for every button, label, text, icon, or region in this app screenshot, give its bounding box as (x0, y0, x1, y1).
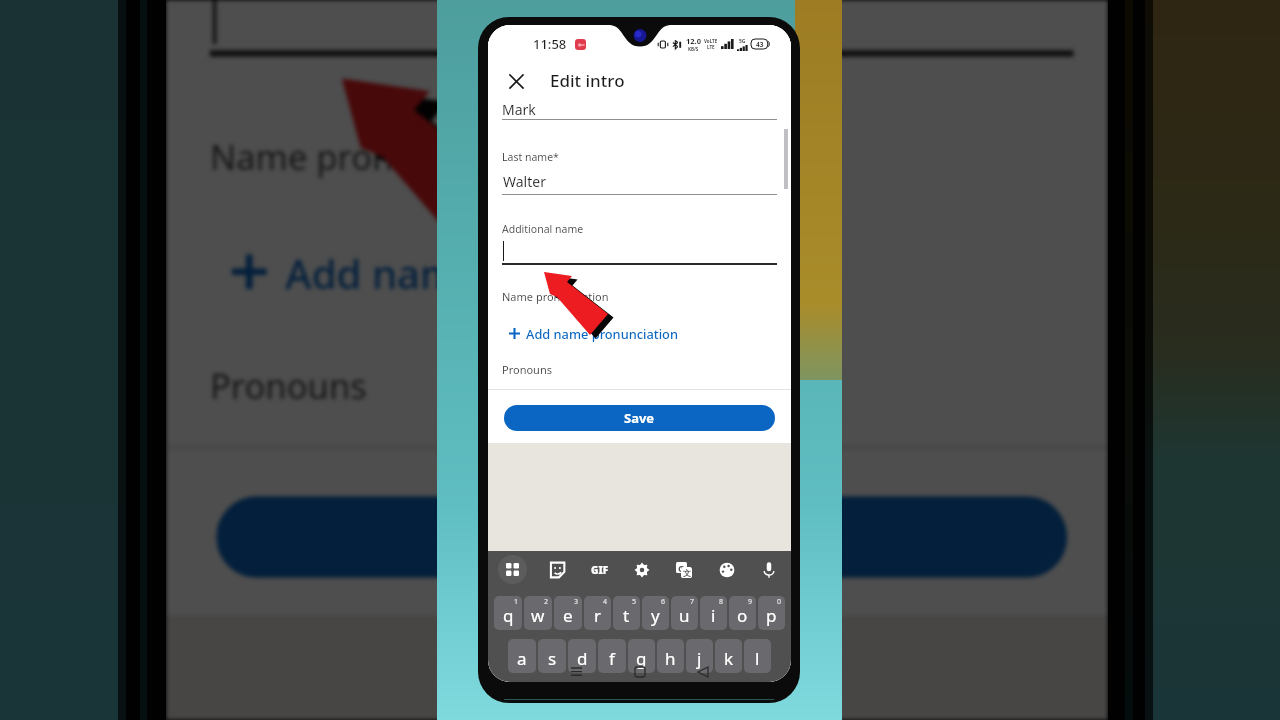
staticText: d (577, 647, 588, 670)
staticText: VoLTE (704, 38, 718, 44)
staticText: Add name pronunciation (526, 325, 678, 342)
button[interactable]: Add name pronunciation (509, 323, 678, 343)
staticText: Name pronunciation (502, 289, 609, 304)
staticText: l (755, 647, 760, 670)
staticText: Pronouns (210, 361, 367, 408)
button[interactable]: Save (504, 405, 775, 431)
button[interactable]: Save (216, 496, 1067, 578)
button[interactable]: y (642, 596, 669, 630)
button[interactable]: l (744, 639, 771, 673)
button[interactable]: Theme (714, 557, 739, 582)
staticText: KB/S (688, 46, 699, 52)
staticText: h (665, 647, 676, 670)
staticText: Add name pronunciation (285, 245, 763, 298)
button[interactable]: h (657, 639, 684, 673)
staticText: 文 (683, 568, 691, 578)
button[interactable]: Translate (671, 557, 696, 582)
staticText: s (548, 647, 557, 670)
button[interactable]: u (671, 596, 698, 630)
staticText: G (678, 562, 685, 573)
staticText: w (531, 604, 545, 627)
button[interactable]: Voice input (756, 557, 781, 582)
staticText: k (724, 647, 734, 670)
staticText: Mark (502, 100, 536, 119)
staticText: i (711, 604, 716, 627)
staticText: Edit intro (550, 69, 625, 92)
button[interactable]: Home (632, 664, 648, 680)
button[interactable]: i (700, 596, 727, 630)
staticText: GIF (591, 563, 609, 577)
button[interactable]: j (686, 639, 713, 673)
staticText: 1 (514, 597, 519, 607)
button[interactable]: GIF (587, 557, 612, 582)
staticText: o (737, 604, 748, 627)
staticText: 11:58 (533, 35, 567, 53)
staticText: p (766, 604, 777, 627)
staticText: y (651, 604, 660, 627)
button[interactable]: t (613, 596, 640, 630)
button[interactable]: Recents (568, 664, 584, 680)
button[interactable]: e (554, 596, 582, 630)
staticText: j (697, 647, 702, 670)
staticText: Pronouns (502, 362, 552, 377)
button[interactable]: f (598, 639, 626, 673)
button[interactable]: Keyboard apps (498, 555, 527, 584)
staticText: 43 (756, 40, 764, 49)
staticText: 5G (739, 38, 746, 45)
staticText: 3 (574, 597, 579, 607)
button[interactable]: Stickers (544, 557, 569, 582)
staticText: 8 (719, 597, 724, 607)
staticText: 9 (748, 597, 753, 607)
staticText: a (517, 647, 527, 670)
staticText: LTE (707, 44, 715, 50)
staticText: e (563, 604, 573, 627)
staticText: r (594, 604, 602, 627)
staticText: 6 (661, 597, 666, 607)
staticText: 12.0 (686, 36, 701, 46)
staticText: g (636, 647, 647, 670)
staticText: Last name* (502, 150, 559, 164)
button[interactable]: g (628, 639, 655, 673)
button[interactable]: r (584, 596, 611, 630)
staticText: q (503, 604, 514, 627)
button[interactable]: Back (695, 664, 711, 680)
button[interactable]: d (568, 639, 596, 673)
staticText: 4 (603, 597, 608, 607)
staticText: Additional name (502, 222, 584, 236)
button[interactable]: w (524, 596, 552, 630)
button[interactable]: s (538, 639, 566, 673)
button[interactable]: Settings (629, 557, 654, 582)
staticText: 7 (690, 597, 695, 607)
button[interactable]: a (508, 639, 536, 673)
button[interactable]: k (715, 639, 742, 673)
button[interactable]: q (494, 596, 522, 630)
staticText: 0 (777, 597, 782, 607)
staticText: f (609, 647, 615, 670)
staticText: Save (593, 509, 690, 565)
staticText: 5 (632, 597, 637, 607)
staticText: u (679, 604, 690, 627)
staticText: Walter (503, 172, 546, 191)
staticText: Save (624, 409, 655, 427)
button[interactable]: p (758, 596, 785, 630)
staticText: Name pronunciation (210, 132, 546, 179)
button[interactable]: o (729, 596, 756, 630)
button[interactable]: Close (501, 66, 531, 96)
button[interactable]: Add name pronunciation (232, 239, 763, 301)
staticText: 2 (544, 597, 549, 607)
staticText: t (623, 604, 630, 627)
